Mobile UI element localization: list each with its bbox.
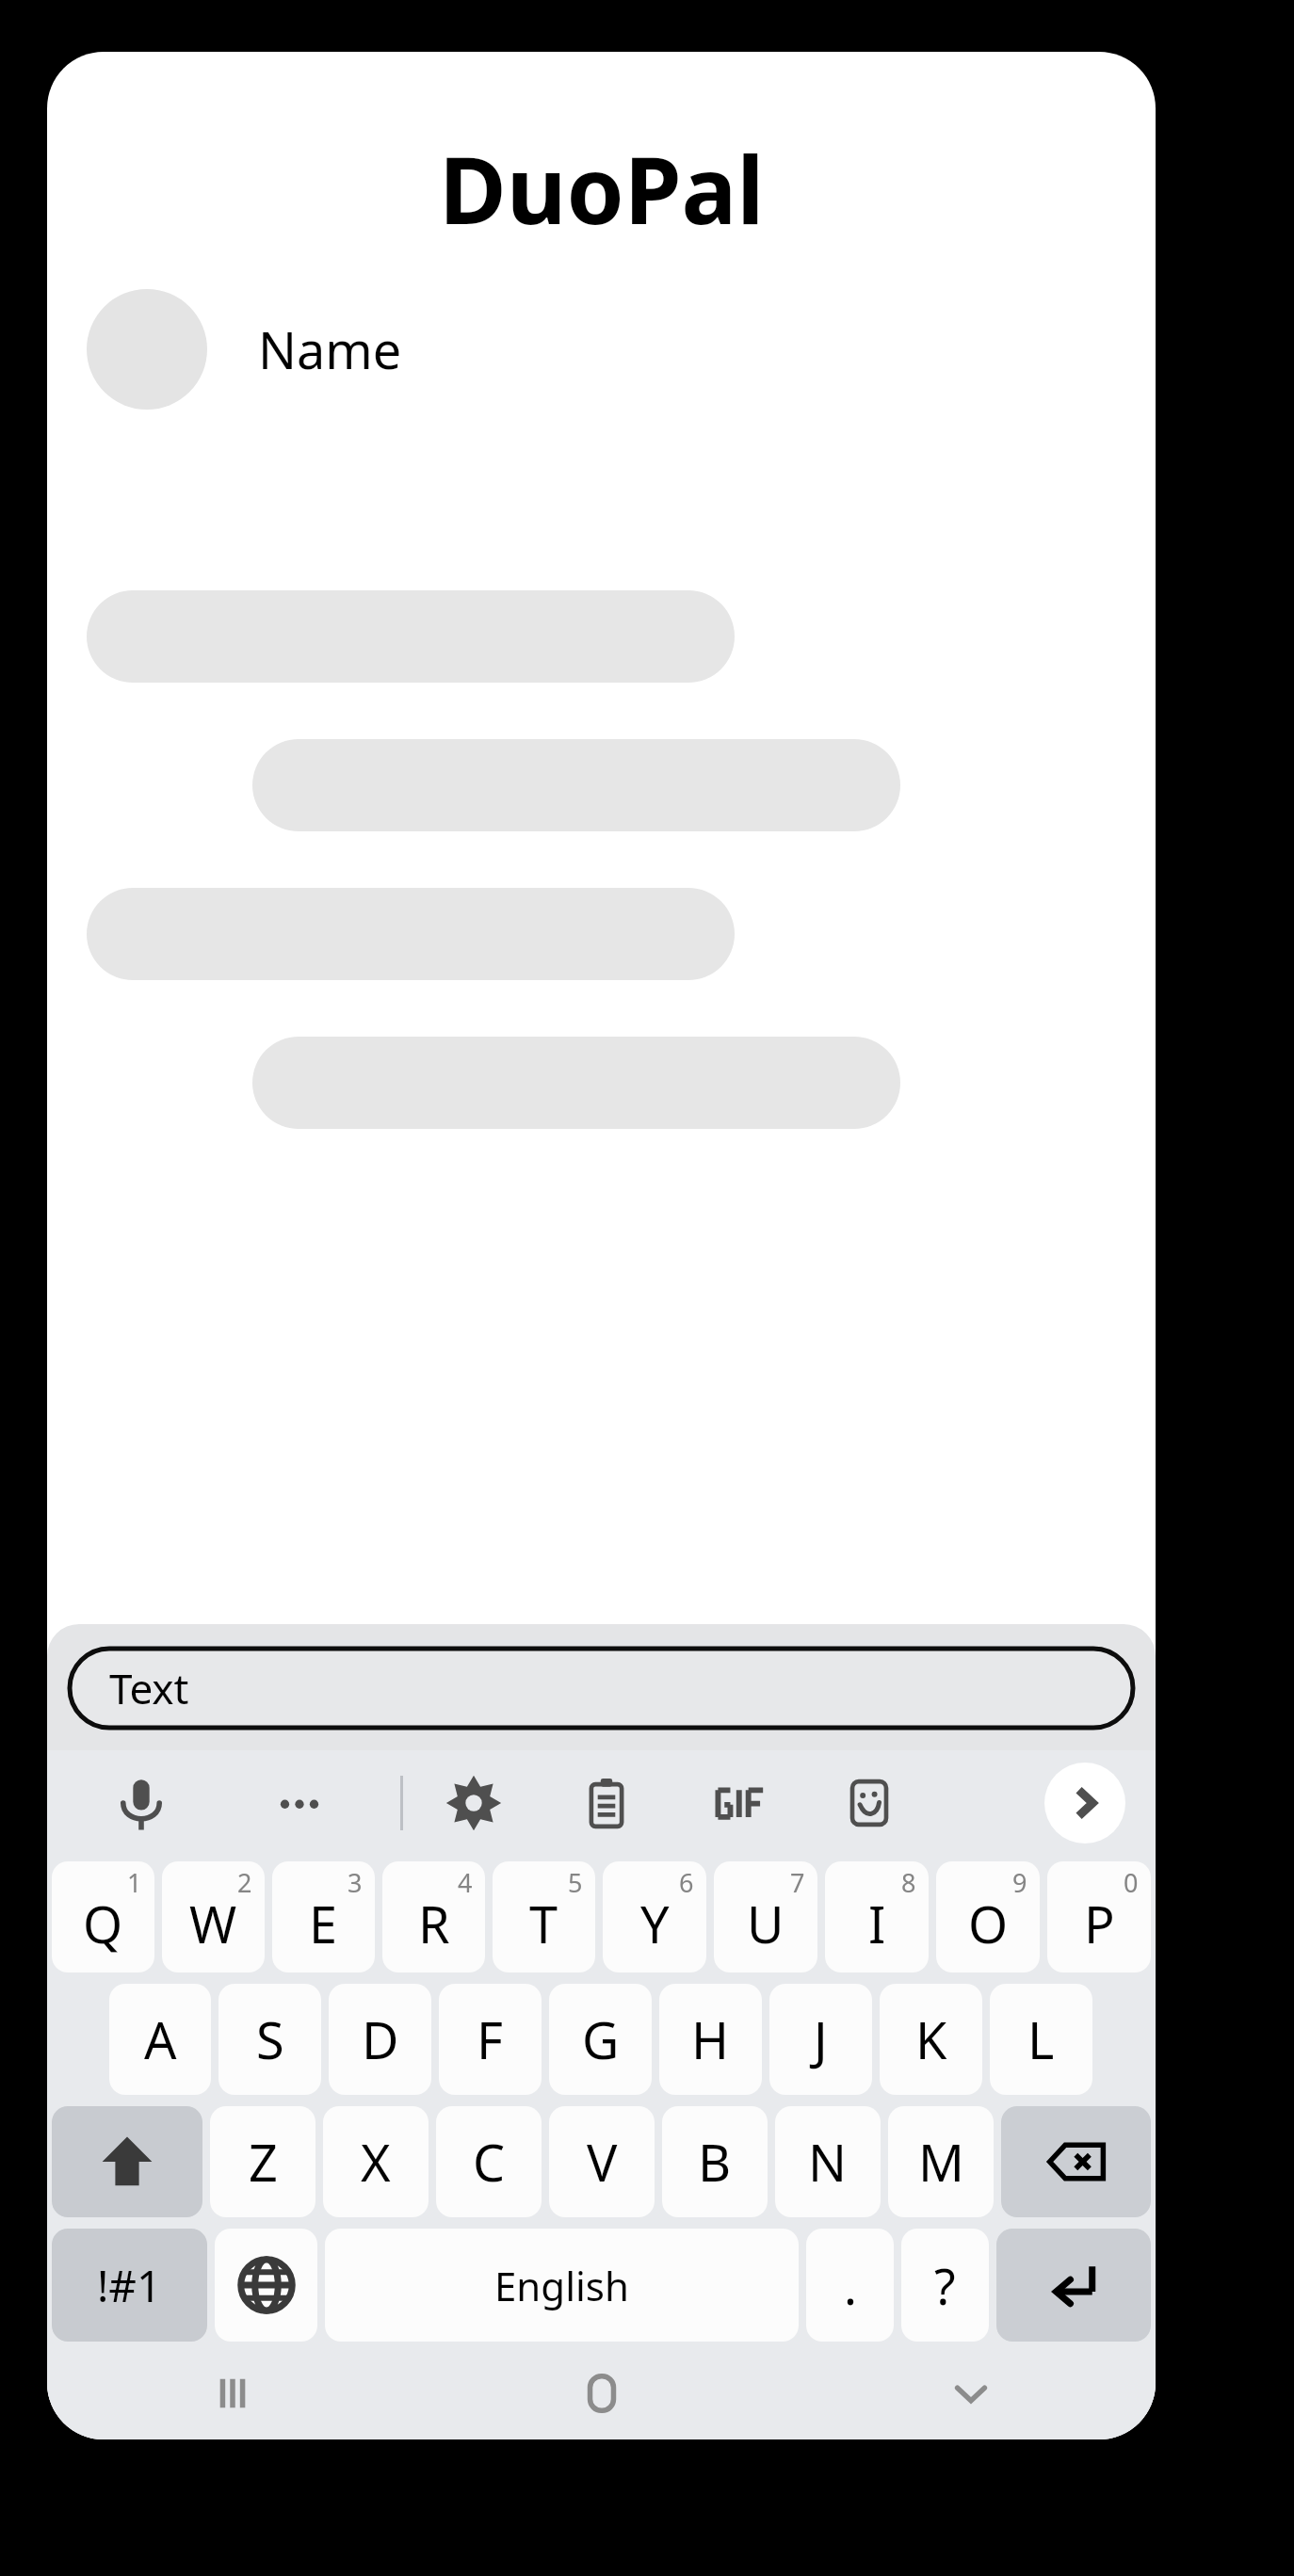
- staticText: S: [256, 2004, 284, 2074]
- button[interactable]: H: [659, 1984, 762, 2095]
- staticText: C: [473, 2127, 506, 2197]
- button[interactable]: Text: [70, 1649, 1133, 1728]
- button[interactable]: Expand toolbar: [1044, 1763, 1125, 1843]
- button[interactable]: 8: [825, 1861, 929, 1972]
- staticText: A: [144, 2004, 177, 2074]
- staticText: 5: [568, 1865, 583, 1900]
- staticText: H: [691, 2004, 730, 2074]
- button[interactable]: Z: [210, 2106, 315, 2217]
- staticText: K: [915, 2004, 947, 2074]
- button[interactable]: [252, 1037, 900, 1129]
- button[interactable]: G: [549, 1984, 652, 2095]
- button[interactable]: GIF: [687, 1750, 793, 1856]
- button[interactable]: !#1: [52, 2229, 207, 2342]
- staticText: E: [309, 1889, 338, 1958]
- staticText: P: [1084, 1889, 1115, 1958]
- staticText: English: [494, 2259, 629, 2312]
- button[interactable]: K: [880, 1984, 982, 2095]
- staticText: T: [529, 1889, 558, 1958]
- staticText: 0: [1124, 1865, 1139, 1900]
- button[interactable]: 9: [936, 1861, 1040, 1972]
- staticText: X: [361, 2127, 391, 2197]
- staticText: 4: [458, 1865, 473, 1900]
- button[interactable]: Backspace: [1001, 2106, 1151, 2217]
- staticText: M: [918, 2127, 964, 2197]
- button[interactable]: B: [662, 2106, 768, 2217]
- button[interactable]: Settings: [421, 1750, 526, 1856]
- staticText: 1: [127, 1865, 142, 1900]
- button[interactable]: 7: [714, 1861, 817, 1972]
- button[interactable]: Hide keyboard: [786, 2347, 1156, 2439]
- button[interactable]: Stickers: [817, 1750, 922, 1856]
- button[interactable]: F: [439, 1984, 542, 2095]
- staticText: N: [808, 2127, 848, 2197]
- button[interactable]: Clipboard: [554, 1750, 659, 1856]
- button[interactable]: L: [990, 1984, 1092, 2095]
- staticText: R: [418, 1889, 450, 1958]
- staticText: V: [587, 2127, 618, 2197]
- staticText: G: [582, 2004, 620, 2074]
- button[interactable]: 4: [382, 1861, 485, 1972]
- staticText: 8: [901, 1865, 916, 1900]
- staticText: DuoPal: [439, 125, 765, 250]
- staticText: .: [844, 2252, 857, 2319]
- button[interactable]: More options: [247, 1750, 352, 1856]
- staticText: Text: [109, 1660, 189, 1716]
- staticText: Q: [83, 1889, 123, 1958]
- button[interactable]: X: [323, 2106, 429, 2217]
- button[interactable]: 0: [1047, 1861, 1151, 1972]
- staticText: 3: [348, 1865, 363, 1900]
- button[interactable]: Home: [417, 2347, 786, 2439]
- button[interactable]: English: [325, 2229, 799, 2342]
- staticText: !#1: [97, 2256, 162, 2315]
- button[interactable]: 6: [603, 1861, 706, 1972]
- staticText: I: [868, 1889, 886, 1958]
- button[interactable]: Recent apps: [47, 2347, 417, 2439]
- button[interactable]: [87, 888, 735, 980]
- button[interactable]: Enter: [996, 2229, 1151, 2342]
- staticText: 2: [237, 1865, 252, 1900]
- button[interactable]: 1: [52, 1861, 154, 1972]
- staticText: Name: [258, 314, 402, 384]
- button[interactable]: Name: [87, 289, 402, 410]
- button[interactable]: M: [888, 2106, 994, 2217]
- button[interactable]: N: [775, 2106, 881, 2217]
- staticText: 9: [1012, 1865, 1027, 1900]
- button[interactable]: 2: [162, 1861, 265, 1972]
- staticText: W: [189, 1889, 237, 1958]
- button[interactable]: Shift: [52, 2106, 202, 2217]
- staticText: L: [1027, 2004, 1055, 2074]
- staticText: F: [477, 2004, 504, 2074]
- button[interactable]: V: [549, 2106, 655, 2217]
- button[interactable]: J: [769, 1984, 872, 2095]
- button[interactable]: .: [806, 2229, 894, 2342]
- staticText: O: [968, 1889, 1009, 1958]
- staticText: J: [814, 2004, 828, 2074]
- button[interactable]: C: [436, 2106, 542, 2217]
- button[interactable]: Change language: [215, 2229, 317, 2342]
- staticText: Z: [249, 2127, 278, 2197]
- staticText: Y: [640, 1889, 670, 1958]
- staticText: ?: [934, 2252, 956, 2319]
- button[interactable]: A: [109, 1984, 211, 2095]
- staticText: 6: [679, 1865, 694, 1900]
- button[interactable]: S: [218, 1984, 321, 2095]
- button[interactable]: 3: [272, 1861, 375, 1972]
- staticText: U: [747, 1889, 784, 1958]
- staticText: D: [362, 2004, 399, 2074]
- button[interactable]: D: [329, 1984, 431, 2095]
- staticText: 7: [790, 1865, 805, 1900]
- button[interactable]: Voice input: [89, 1750, 194, 1856]
- button[interactable]: [252, 739, 900, 831]
- staticText: B: [698, 2127, 732, 2197]
- button[interactable]: ?: [901, 2229, 989, 2342]
- button[interactable]: [87, 590, 735, 683]
- button[interactable]: 5: [493, 1861, 595, 1972]
